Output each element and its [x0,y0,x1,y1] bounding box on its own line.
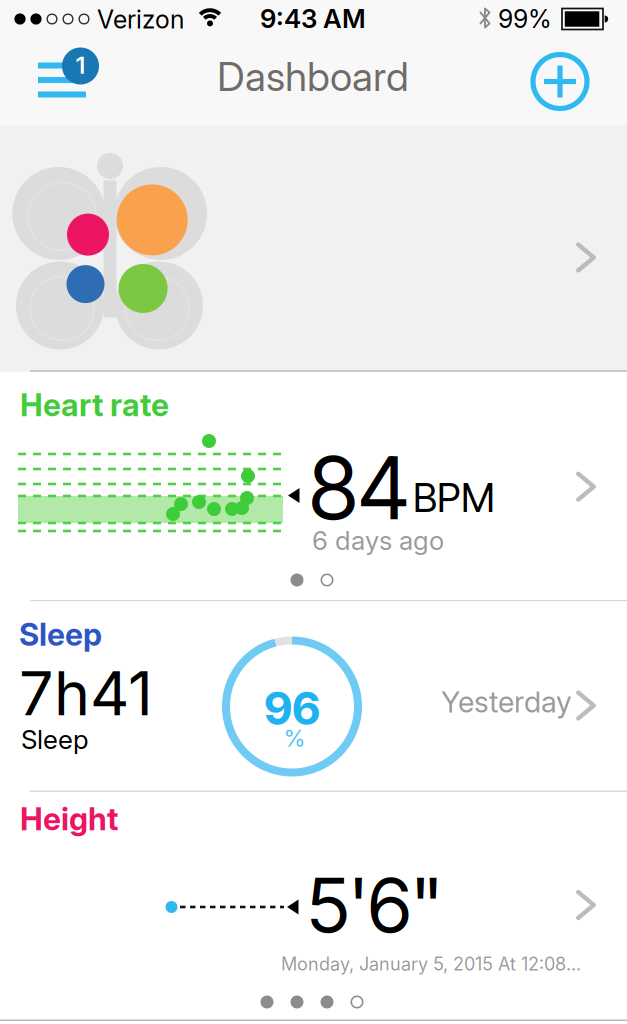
staticText: 96 [264,681,320,736]
staticText: Monday, January 5, 2015 At 12:08... [281,953,581,975]
staticText: Yesterday [441,684,572,720]
staticText: 5'6" [307,859,443,951]
button[interactable]: Heart rate [0,372,627,600]
button[interactable]: Height [0,792,627,1019]
staticText: 6 days ago [312,525,444,556]
button[interactable]: Menu [24,44,104,116]
staticText: Height [20,800,118,838]
staticText: 7h41 [19,656,153,730]
staticText: 9:43 AM [260,3,366,34]
button[interactable]: Sleep [0,601,627,790]
staticText: Dashboard [217,52,409,101]
staticText: BPM [413,473,495,522]
staticText: Verizon [97,4,184,35]
staticText: 84 [309,436,409,540]
staticText: % [283,725,305,752]
staticText: Heart rate [20,386,169,424]
staticText: Sleep [21,724,89,755]
button[interactable]: Add [527,48,593,114]
button[interactable]: Profile [0,125,627,370]
staticText: Sleep [19,616,102,653]
staticText: 99% [498,4,552,34]
staticText: 1 [75,50,85,79]
